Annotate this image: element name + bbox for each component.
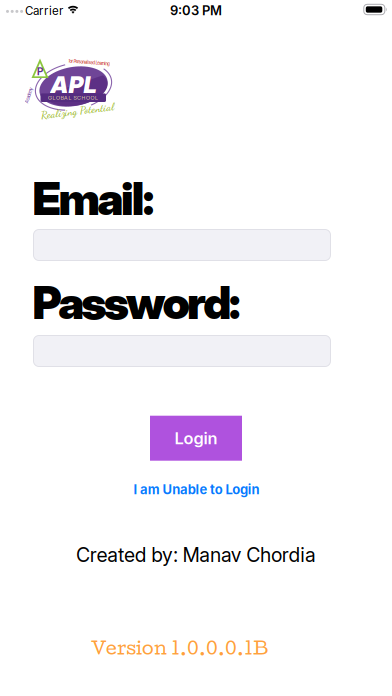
staticText: 9:03 PM (170, 3, 222, 18)
staticText: I am Unable to Login (133, 482, 260, 497)
staticText: Academy (21, 93, 37, 98)
staticText: Realizing Potential (40, 105, 114, 117)
staticText: APL (50, 71, 96, 99)
staticText: GLOBAL SCHOOL (48, 94, 98, 101)
button[interactable]: Login (150, 416, 242, 461)
staticText: Carrier (25, 4, 63, 18)
staticText: Version 1.0.0.0.1B (91, 636, 268, 659)
staticText: P (37, 65, 43, 78)
staticText: Created by: Manav Chordia (76, 543, 316, 567)
staticText: for Personalised Learning (68, 60, 109, 65)
staticText: Password: (32, 275, 241, 330)
staticText: Login (174, 428, 217, 448)
staticText: Email: (33, 171, 155, 226)
button[interactable]: I am Unable to Login (133, 482, 260, 497)
